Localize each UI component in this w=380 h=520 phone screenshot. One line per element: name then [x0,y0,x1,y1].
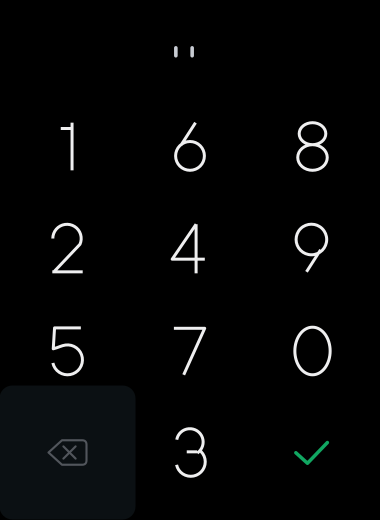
button[interactable] [6,197,129,299]
button[interactable]: Confirm [251,401,374,503]
button[interactable] [129,197,251,299]
button[interactable]: Delete [6,401,129,503]
button[interactable] [6,95,129,197]
button[interactable] [129,401,251,503]
button[interactable] [129,95,251,197]
button[interactable] [129,300,251,402]
button[interactable] [6,300,129,402]
button[interactable] [251,95,374,197]
button[interactable] [251,300,374,402]
button[interactable] [251,197,374,299]
